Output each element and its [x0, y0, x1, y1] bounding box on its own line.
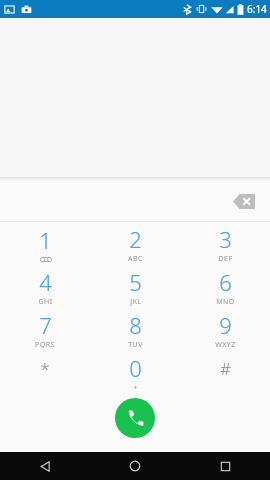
- button[interactable]: Recents: [180, 452, 270, 480]
- button[interactable]: #: [180, 351, 270, 394]
- button[interactable]: 0: [90, 351, 180, 394]
- button[interactable]: 9: [180, 308, 270, 351]
- staticText: 9: [219, 310, 232, 340]
- button[interactable]: 2: [90, 222, 180, 265]
- staticText: *: [40, 357, 50, 380]
- staticText: 3: [219, 224, 232, 254]
- button[interactable]: Call: [115, 398, 155, 438]
- button[interactable]: *: [0, 351, 90, 394]
- staticText: 6: [219, 267, 232, 297]
- staticText: GHI: [38, 297, 53, 307]
- staticText: 4: [39, 267, 52, 297]
- button[interactable]: Home: [90, 452, 180, 480]
- staticText: WXYZ: [215, 340, 236, 350]
- staticText: +: [133, 383, 138, 393]
- staticText: PQRS: [35, 340, 55, 350]
- button[interactable]: 3: [180, 222, 270, 265]
- staticText: TUV: [128, 340, 143, 350]
- button[interactable]: 7: [0, 308, 90, 351]
- staticText: ABC: [128, 254, 143, 264]
- staticText: 5: [129, 267, 142, 297]
- staticText: 0: [129, 353, 142, 383]
- button[interactable]: Backspace: [224, 184, 264, 218]
- staticText: JKL: [130, 297, 142, 307]
- staticText: MNO: [216, 297, 235, 307]
- button[interactable]: 1: [0, 222, 90, 265]
- staticText: DEF: [218, 254, 233, 264]
- staticText: 2: [129, 224, 142, 254]
- button[interactable]: 4: [0, 265, 90, 308]
- staticText: 1: [39, 225, 52, 255]
- staticText: #: [220, 357, 231, 380]
- staticText: 7: [39, 310, 52, 340]
- staticText: 8: [129, 310, 142, 340]
- button[interactable]: 6: [180, 265, 270, 308]
- button[interactable]: 8: [90, 308, 180, 351]
- button[interactable]: 5: [90, 265, 180, 308]
- button[interactable]: Back: [0, 452, 90, 480]
- staticText: 6:14: [247, 2, 267, 16]
